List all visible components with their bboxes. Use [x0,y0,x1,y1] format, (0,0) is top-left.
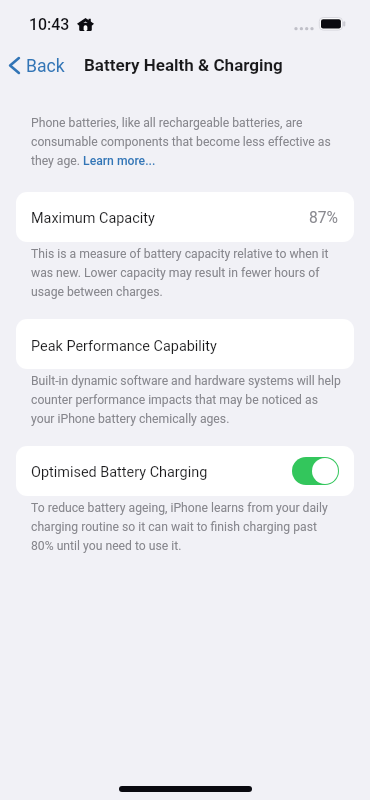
button[interactable]: Maximum Capacity [16,192,354,242]
button[interactable]: Back [0,50,75,81]
staticText: Phone batteries, like all rechargeable b… [31,112,342,169]
staticText: To reduce battery ageing, iPhone learns … [31,497,342,554]
staticText: This is a measure of battery capacity re… [31,243,342,300]
staticText: Battery Health & Charging [84,55,283,75]
staticText: Maximum Capacity [31,210,155,227]
staticText: 10:43 [29,15,70,34]
other: Battery and signal status [0,0,370,46]
staticText: Optimised Battery Charging [31,464,208,481]
button[interactable]: Optimised Battery Charging [16,446,354,496]
staticText: Back [26,56,65,77]
staticText: Peak Performance Capability [31,338,217,355]
button[interactable]: Peak Performance Capability [16,319,354,369]
button[interactable]: Optimised Battery Charging toggle [292,457,339,485]
staticText: Built-in dynamic software and hardware s… [31,370,342,427]
staticText: 87% [309,209,338,227]
